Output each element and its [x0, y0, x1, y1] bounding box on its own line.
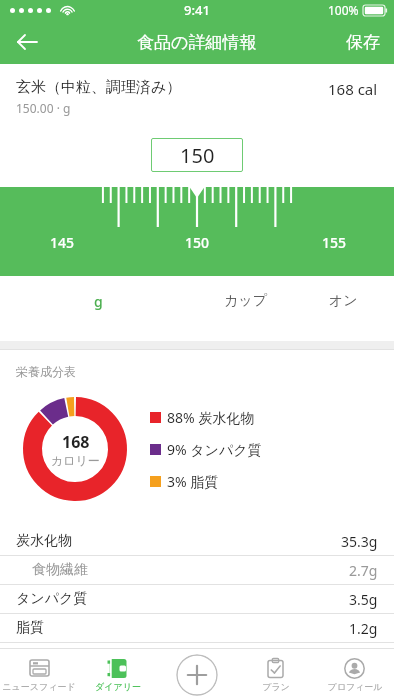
staticText: ダイアリー [95, 681, 141, 692]
staticText: 100% [328, 2, 359, 18]
staticText: カロリー [51, 453, 100, 468]
button[interactable]: オン [293, 276, 394, 316]
staticText: 145 [50, 233, 75, 252]
staticText: 玄米（中粒、調理済み） [16, 78, 182, 97]
staticText: 9% タンパク質 [167, 440, 262, 459]
button[interactable]: カップ [197, 276, 293, 316]
button[interactable]: ニュースフィード [0, 649, 78, 700]
button[interactable]: ダイアリー [78, 649, 157, 700]
staticText: 1.2g [349, 619, 378, 638]
staticText: 2.7g [349, 561, 378, 580]
staticText: 155 [322, 233, 347, 252]
button[interactable]: 150 [151, 138, 243, 172]
staticText: カップ [224, 292, 267, 310]
staticText: タンパク質 [16, 590, 349, 608]
staticText: プロフィール [327, 681, 383, 692]
button[interactable]: プラン [236, 649, 315, 700]
staticText: 食物繊維 [32, 561, 349, 579]
button[interactable]: タンパク質 [0, 585, 394, 613]
staticText: 9:41 [184, 1, 210, 19]
staticText: 保存 [346, 32, 380, 53]
staticText: g [94, 292, 103, 311]
staticText: 食品の詳細情報 [137, 32, 257, 53]
button[interactable]: g [0, 276, 197, 316]
button[interactable]: Add [176, 654, 218, 696]
staticText: 88% 炭水化物 [167, 408, 255, 427]
button[interactable]: Back [0, 20, 54, 64]
staticText: 150 [180, 142, 215, 169]
staticText: 3.5g [349, 590, 378, 609]
staticText: 150 [185, 233, 210, 252]
button[interactable]: 脂質 [0, 614, 394, 642]
staticText: 栄養成分表 [16, 364, 76, 379]
staticText: 炭水化物 [16, 532, 341, 550]
staticText: 3% 脂質 [167, 472, 219, 491]
staticText: オン [329, 292, 358, 310]
staticText: 脂質 [16, 619, 349, 637]
button[interactable]: 保存 [332, 20, 394, 64]
staticText: 168 [62, 431, 90, 453]
staticText: ニュースフィード [2, 681, 76, 692]
staticText: プラン [262, 681, 290, 692]
button[interactable]: 炭水化物 [0, 527, 394, 555]
staticText: 168 cal [328, 79, 378, 99]
staticText: 150.00 · g [16, 100, 71, 116]
staticText: 35.3g [341, 532, 378, 551]
button[interactable]: 食物繊維 [0, 556, 394, 584]
button[interactable]: プロフィール [315, 649, 394, 700]
